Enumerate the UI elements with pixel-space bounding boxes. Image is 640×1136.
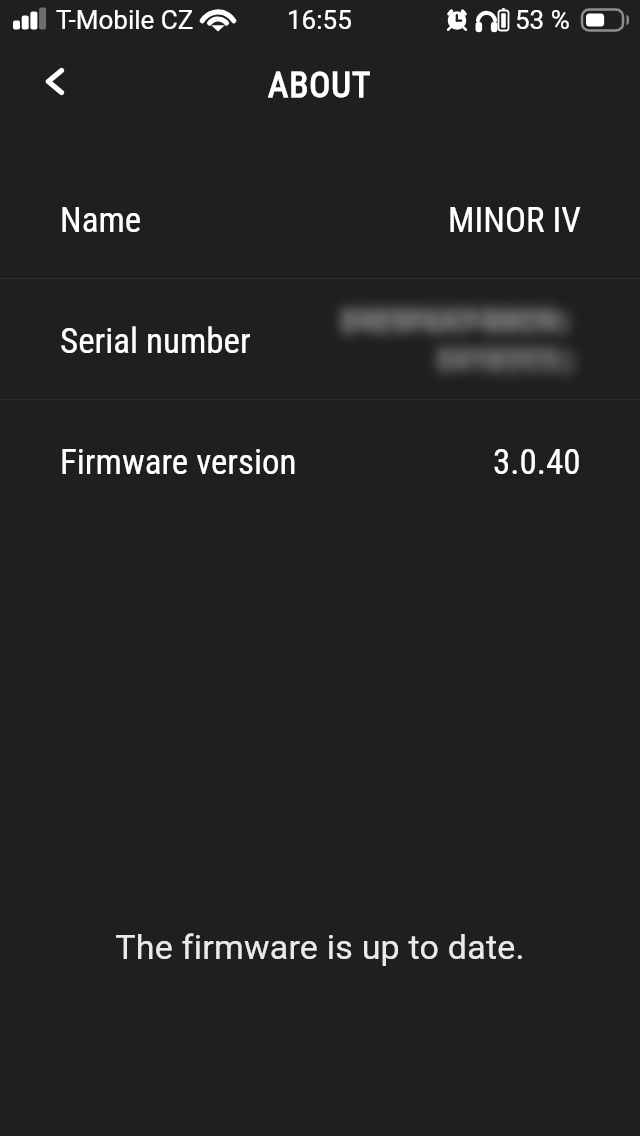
staticText: MINOR IV <box>448 200 581 241</box>
staticText: Name <box>60 200 142 241</box>
staticText: 53 % <box>515 5 570 35</box>
staticText: Serial number <box>60 321 251 362</box>
staticText: The firmware is up to date. <box>115 927 525 967</box>
staticText: T-Mobile CZ <box>56 5 194 35</box>
staticText: 16:55 <box>287 5 352 35</box>
staticText: ABOUT <box>268 65 372 106</box>
button[interactable]: Name <box>0 158 640 278</box>
staticText: 3.0.40 <box>493 442 581 483</box>
staticText: Firmware version <box>60 442 297 483</box>
button[interactable]: Serial number <box>0 279 640 399</box>
button[interactable]: Back <box>25 52 83 110</box>
staticText: 0A1B2C3D <box>436 343 577 381</box>
staticText: D4E5F6A7-B8C90 <box>340 304 571 342</box>
button[interactable]: Firmware version <box>0 400 640 520</box>
